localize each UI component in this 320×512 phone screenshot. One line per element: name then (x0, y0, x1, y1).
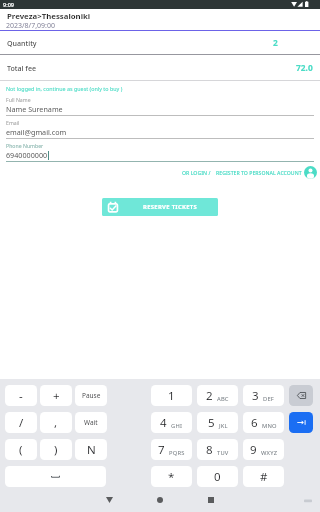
other: Enter (297, 419, 306, 426)
button[interactable] (5, 466, 106, 487)
button[interactable]: Full Name (6, 95, 314, 117)
button[interactable]: 8 (197, 439, 238, 460)
staticText: RESERVE TICKETS (143, 203, 198, 211)
staticText: 6940000000 (6, 150, 48, 160)
button[interactable]: 1 (151, 385, 192, 406)
staticText: 3 (252, 388, 259, 404)
button[interactable]: 6 (243, 412, 284, 433)
button[interactable]: Backspace (289, 385, 313, 406)
staticText: 8 (206, 442, 213, 458)
staticText: email@gmail.com (6, 127, 67, 137)
button[interactable]: , (40, 412, 72, 433)
staticText: 9 (250, 442, 257, 458)
staticText: 2023/8/7,09:00 (6, 21, 55, 31)
staticText: WXYZ (261, 449, 278, 457)
staticText: N (87, 442, 96, 458)
staticText: 7 (158, 442, 165, 458)
staticText: Full Name (6, 96, 31, 103)
staticText: Email (6, 119, 20, 126)
staticText: 4 (160, 415, 167, 431)
staticText: JKL (219, 422, 228, 430)
staticText: 6 (251, 415, 258, 431)
staticText: ( (19, 442, 23, 458)
staticText: Not logged in, continue as guest (only t… (6, 85, 123, 92)
staticText: 72.0 (296, 62, 313, 73)
other: Backspace (297, 392, 306, 399)
button[interactable]: Total fee (0, 55, 320, 80)
staticText: DEF (263, 395, 275, 403)
staticText: 2 (273, 37, 278, 48)
staticText: - (19, 388, 23, 404)
button[interactable]: # (243, 466, 284, 487)
button[interactable]: Hide keyboard (99, 491, 119, 509)
staticText: 9:09 (3, 1, 14, 8)
button[interactable]: N (75, 439, 107, 460)
button[interactable]: Wait (75, 412, 107, 433)
staticText: Phone Number (6, 142, 44, 149)
button[interactable]: Email (6, 118, 314, 140)
button[interactable]: ) (40, 439, 72, 460)
button[interactable]: Recent apps (201, 491, 221, 509)
button[interactable]: - (5, 385, 37, 406)
button[interactable]: + (40, 385, 72, 406)
button[interactable]: Phone Number (6, 141, 314, 163)
staticText: Quantity (7, 38, 37, 48)
button[interactable]: Quantity (0, 31, 320, 54)
staticText: Wait (84, 418, 98, 427)
staticText: ABC (217, 395, 229, 403)
button[interactable]: RESERVE TICKETS (102, 198, 218, 216)
staticText: Total fee (7, 63, 37, 73)
staticText: 0 (214, 469, 221, 485)
staticText: 5 (208, 415, 215, 431)
button[interactable]: Account (304, 166, 317, 179)
staticText: Preveza>Thessaloniki (7, 11, 91, 22)
button[interactable]: 3 (243, 385, 284, 406)
button[interactable]: 2 (197, 385, 238, 406)
button[interactable]: ( (5, 439, 37, 460)
button[interactable]: Enter (289, 412, 313, 433)
button[interactable]: 0 (197, 466, 238, 487)
staticText: TUV (217, 449, 229, 457)
button[interactable]: 7 (151, 439, 192, 460)
button[interactable]: 4 (151, 412, 192, 433)
button[interactable]: Pause (75, 385, 107, 406)
staticText: / (19, 415, 24, 431)
staticText: * (168, 469, 175, 485)
staticText: MNO (262, 422, 277, 430)
button[interactable]: Switch keyboard (299, 491, 317, 509)
button[interactable]: OR LOGIN / (182, 167, 211, 178)
staticText: Pause (82, 391, 101, 400)
button[interactable]: * (151, 466, 192, 487)
staticText: GHI (171, 422, 183, 430)
button[interactable]: / (5, 412, 37, 433)
staticText: + (53, 388, 60, 404)
button[interactable]: REGISTER TO PERSONAL ACCOUNT (216, 167, 302, 178)
staticText: 2 (206, 388, 213, 404)
button[interactable]: Home (150, 491, 170, 509)
staticText: Name Surename (6, 104, 63, 114)
button[interactable]: 5 (197, 412, 238, 433)
staticText: PQRS (169, 449, 185, 457)
staticText: ) (54, 442, 58, 458)
staticText: # (260, 469, 268, 485)
staticText: , (54, 415, 58, 431)
staticText: 1 (168, 388, 175, 404)
button[interactable]: 9 (243, 439, 284, 460)
